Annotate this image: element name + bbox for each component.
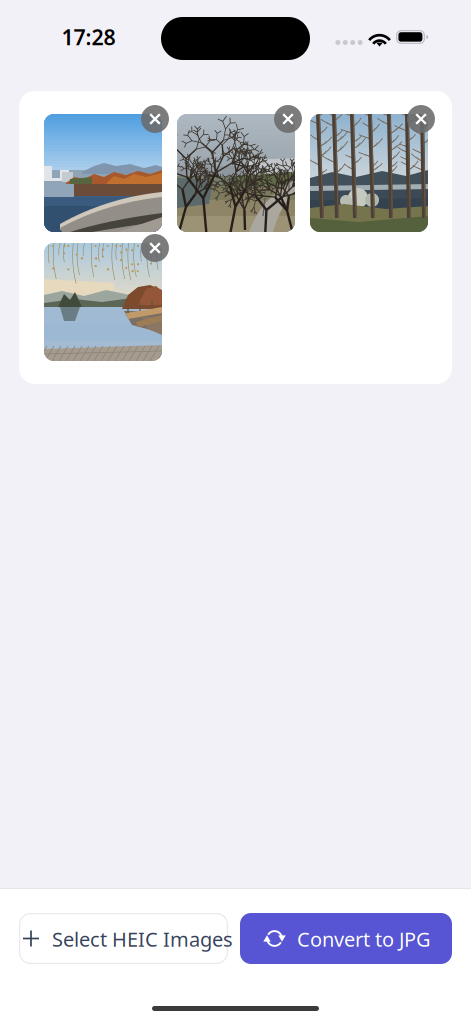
button[interactable]: Remove image — [407, 105, 435, 133]
staticText: 17:28 — [61, 23, 115, 51]
button[interactable]: Convert to JPG — [240, 913, 452, 964]
button[interactable]: Remove image — [141, 234, 169, 262]
button[interactable]: Select HEIC Images — [19, 913, 228, 964]
button[interactable]: Remove image — [274, 105, 302, 133]
button[interactable]: Remove image — [141, 105, 169, 133]
staticText: Select HEIC Images — [52, 926, 233, 952]
staticText: Convert to JPG — [297, 926, 431, 952]
